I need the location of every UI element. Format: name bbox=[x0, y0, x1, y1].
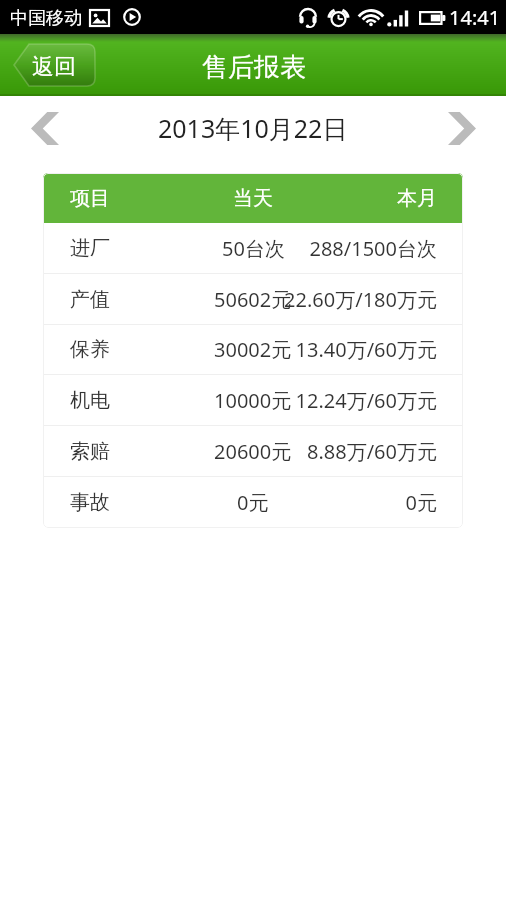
staticText: 售后报表 bbox=[202, 51, 306, 84]
staticText: 索赔 bbox=[70, 439, 110, 464]
staticText: 8.88万/60万元 bbox=[307, 438, 437, 465]
button[interactable]: 进厂 bbox=[43, 223, 463, 273]
button[interactable]: 机电 bbox=[43, 375, 463, 425]
staticText: 12.24万/60万元 bbox=[295, 387, 437, 414]
staticText: 30002元 bbox=[214, 336, 292, 363]
staticText: 2013年10月22日 bbox=[158, 111, 348, 145]
button[interactable]: 返回 bbox=[14, 44, 95, 86]
button[interactable]: Previous day bbox=[19, 105, 71, 151]
staticText: 本月 bbox=[397, 186, 437, 211]
staticText: 0元 bbox=[237, 489, 269, 516]
staticText: 50602元 bbox=[214, 286, 292, 313]
staticText: 22.60万/180万元 bbox=[284, 286, 437, 313]
staticText: 20600元 bbox=[214, 438, 292, 465]
staticText: 当天 bbox=[233, 186, 273, 211]
staticText: 13.40万/60万元 bbox=[295, 336, 437, 363]
staticText: 288/1500台次 bbox=[309, 235, 437, 262]
staticText: 50台次 bbox=[222, 235, 285, 262]
staticText: 保养 bbox=[70, 337, 110, 362]
staticText: 10000元 bbox=[214, 387, 292, 414]
staticText: 返回 bbox=[32, 53, 76, 81]
button[interactable]: 索赔 bbox=[43, 426, 463, 476]
staticText: 事故 bbox=[70, 490, 110, 515]
staticText: 产值 bbox=[70, 287, 110, 312]
button[interactable]: 产值 bbox=[43, 274, 463, 324]
staticText: 14:41 bbox=[449, 4, 501, 31]
button[interactable]: Next day bbox=[436, 105, 488, 151]
staticText: 0元 bbox=[405, 489, 437, 516]
staticText: 机电 bbox=[70, 388, 110, 413]
button[interactable]: 事故 bbox=[43, 477, 463, 528]
button[interactable]: 保养 bbox=[43, 325, 463, 374]
staticText: 中国移动 bbox=[10, 7, 82, 30]
staticText: 进厂 bbox=[70, 236, 110, 261]
staticText: 项目 bbox=[70, 186, 110, 211]
